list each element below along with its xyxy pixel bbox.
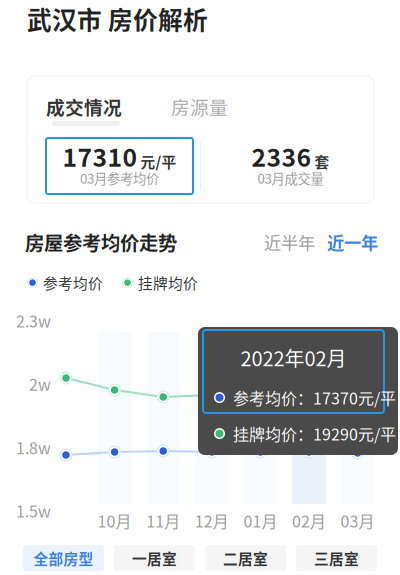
staticText: 近半年 [264, 229, 315, 254]
staticText: 成交情况 [46, 93, 122, 120]
staticText: 03月参考均价 [80, 168, 159, 188]
button[interactable]: 17310 [46, 138, 193, 194]
staticText: 17310 [62, 138, 137, 174]
staticText: 全部房型 [33, 547, 93, 569]
staticText: 套 [314, 151, 329, 172]
button[interactable]: 2336 [217, 138, 364, 194]
staticText: 挂牌均价 [138, 272, 198, 293]
staticText: 武汉市 房价解析 [27, 1, 208, 37]
staticText: 二居室 [223, 547, 268, 569]
staticText: 房源量 [171, 93, 228, 120]
staticText: 近一年 [327, 229, 378, 254]
staticText: 元/平 [140, 151, 176, 172]
staticText: 2336 [251, 138, 311, 174]
button[interactable]: 三居室 [296, 545, 377, 571]
button[interactable]: 二居室 [205, 545, 286, 571]
staticText: 挂牌均价：19290元/平 [233, 422, 396, 445]
button[interactable]: 一居室 [114, 545, 195, 571]
staticText: 2.3w [16, 309, 51, 332]
staticText: 1.8w [16, 436, 51, 459]
staticText: 2w [29, 372, 51, 395]
staticText: 12月 [195, 509, 229, 532]
staticText: 01月 [243, 509, 277, 532]
button[interactable]: 近半年 [264, 229, 315, 254]
button[interactable]: 房源量 [171, 93, 227, 115]
staticText: 1.5w [16, 499, 51, 522]
staticText: 03月成交量 [257, 168, 323, 188]
staticText: 参考均价：17370元/平 [233, 386, 396, 409]
staticText: 11月 [146, 509, 180, 532]
staticText: 三居室 [314, 547, 359, 569]
staticText: 2022年02月 [240, 343, 346, 372]
button[interactable]: 全部房型 [23, 545, 104, 571]
staticText: 房屋参考均价走势 [25, 228, 177, 256]
button[interactable]: 近一年 [327, 229, 378, 254]
staticText: 10月 [98, 509, 132, 532]
staticText: 03月 [341, 509, 375, 532]
staticText: 参考均价 [43, 272, 103, 293]
staticText: 一居室 [132, 547, 177, 569]
staticText: 02月 [292, 509, 326, 532]
button[interactable]: 成交情况 [46, 93, 121, 127]
